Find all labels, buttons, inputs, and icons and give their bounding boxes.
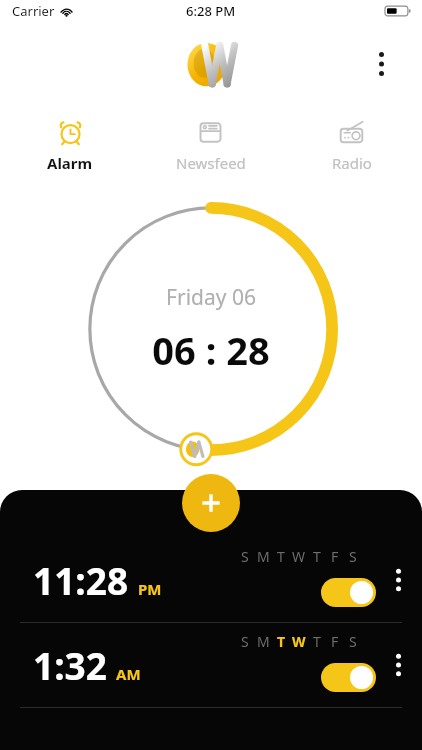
staticText: PM xyxy=(138,579,162,599)
button[interactable]: 1:32 xyxy=(0,623,422,707)
staticText: T xyxy=(313,632,321,651)
staticText: T xyxy=(313,547,321,566)
staticText: Carrier xyxy=(12,2,55,20)
staticText: M xyxy=(257,547,270,566)
staticText: Newsfeed xyxy=(176,153,246,173)
button[interactable]: Alarm xyxy=(0,106,140,186)
button[interactable]: Alarm options xyxy=(382,564,414,596)
staticText: Alarm xyxy=(47,153,93,173)
staticText: S xyxy=(349,632,357,651)
staticText: T xyxy=(277,632,286,651)
staticText: 06 : 28 xyxy=(152,324,270,376)
button[interactable]: Alarm enabled xyxy=(321,578,376,607)
staticText: Radio xyxy=(332,153,372,173)
staticText: S xyxy=(241,632,249,651)
staticText: Friday 06 xyxy=(166,283,256,312)
staticText: AM xyxy=(116,664,141,684)
button[interactable]: Newsfeed xyxy=(140,106,281,186)
button[interactable]: Add alarm xyxy=(182,474,240,532)
staticText: 6:28 PM xyxy=(186,2,236,20)
staticText: 1:32 xyxy=(33,640,107,690)
staticText: F xyxy=(331,547,339,566)
staticText: S xyxy=(349,547,357,566)
button[interactable]: More options xyxy=(364,47,398,81)
staticText: S xyxy=(241,547,249,566)
staticText: W xyxy=(292,632,306,651)
staticText: 11:28 xyxy=(33,555,129,605)
button[interactable]: Alarm options xyxy=(382,649,414,681)
staticText: M xyxy=(257,632,270,651)
staticText: T xyxy=(277,547,285,566)
button[interactable]: Alarm enabled xyxy=(321,663,376,692)
button[interactable]: Radio xyxy=(281,106,422,186)
staticText: F xyxy=(331,632,339,651)
button[interactable]: 11:28 xyxy=(0,538,422,622)
staticText: W xyxy=(292,547,306,566)
